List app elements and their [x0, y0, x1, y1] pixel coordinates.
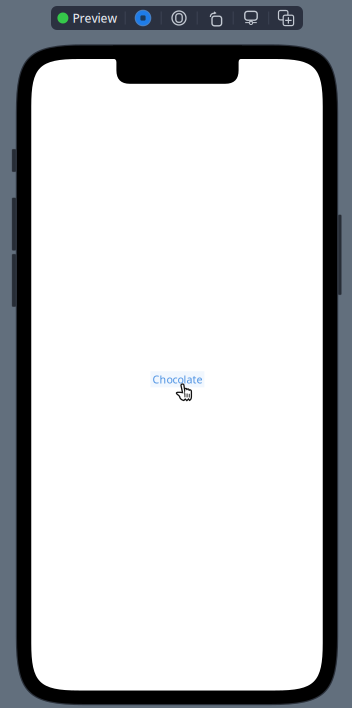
button[interactable]: Preview on device [233, 6, 269, 30]
button[interactable]: Duplicate preview [269, 6, 303, 30]
staticText: Preview [72, 10, 117, 26]
staticText: Chocolate [152, 372, 202, 386]
button[interactable]: Live preview [125, 6, 161, 30]
button[interactable]: Chocolate [150, 371, 204, 387]
button[interactable]: Preview [51, 6, 125, 30]
button[interactable]: Device settings [161, 6, 197, 30]
button[interactable]: Rotate device [197, 6, 233, 30]
